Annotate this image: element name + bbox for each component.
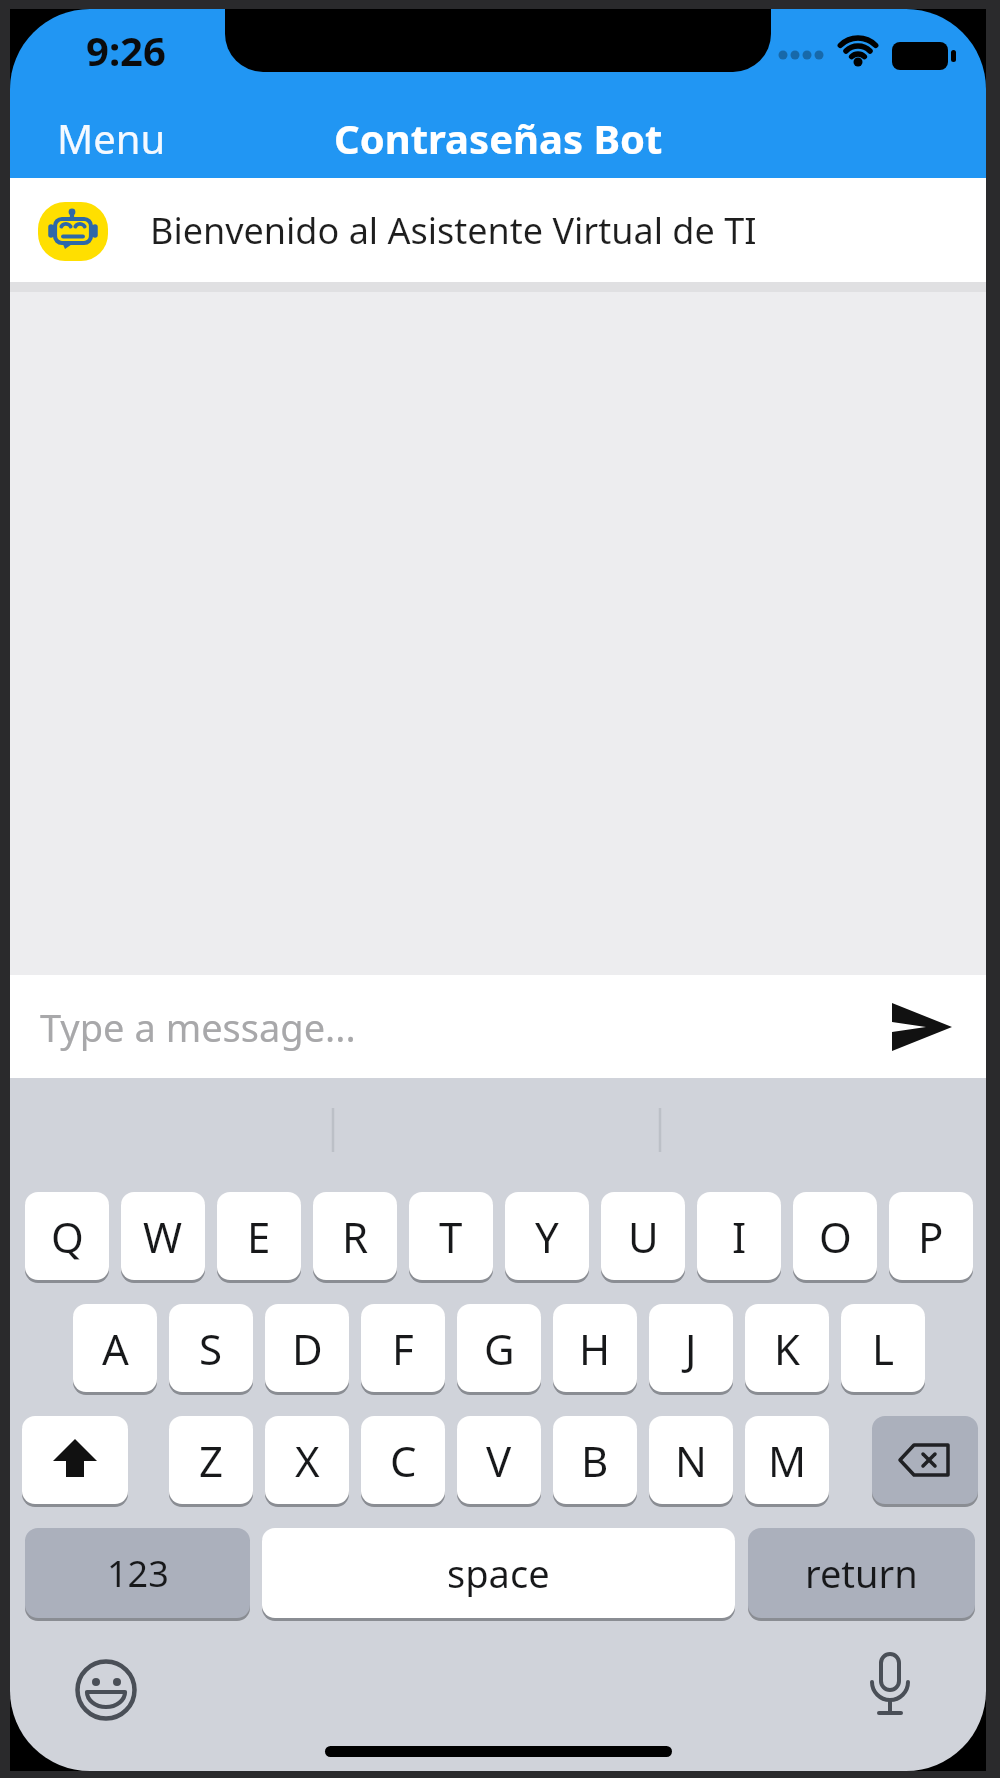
staticText: Menu (57, 111, 166, 165)
button[interactable]: Y (505, 1192, 589, 1280)
staticText: O (819, 1208, 852, 1265)
button[interactable]: D (265, 1304, 349, 1392)
staticText: E (247, 1208, 271, 1265)
staticText: J (685, 1320, 697, 1377)
staticText: K (774, 1320, 800, 1377)
button[interactable] (865, 1652, 915, 1728)
staticText: Contraseñas Bot (334, 111, 663, 165)
button[interactable]: H (553, 1304, 637, 1392)
staticText: Type a message... (40, 1001, 356, 1053)
button[interactable]: 123 (25, 1528, 250, 1618)
staticText: B (581, 1432, 609, 1489)
button[interactable]: M (745, 1416, 829, 1504)
staticText: H (579, 1320, 611, 1377)
staticText: F (392, 1320, 414, 1377)
button[interactable]: I (697, 1192, 781, 1280)
staticText: M (768, 1432, 807, 1489)
button[interactable]: V (457, 1416, 541, 1504)
button[interactable]: O (793, 1192, 877, 1280)
staticText: C (390, 1432, 417, 1489)
staticText: S (199, 1320, 223, 1377)
button[interactable]: W (121, 1192, 205, 1280)
button[interactable]: A (73, 1304, 157, 1392)
button[interactable]: K (745, 1304, 829, 1392)
button[interactable]: U (601, 1192, 685, 1280)
staticText: Y (535, 1208, 559, 1265)
staticText: U (628, 1208, 659, 1265)
staticText: G (484, 1320, 515, 1377)
staticText: A (102, 1320, 129, 1377)
staticText: I (732, 1208, 747, 1265)
staticText: 123 (107, 1549, 169, 1598)
button[interactable]: Type a message... (10, 975, 986, 1078)
button[interactable]: J (649, 1304, 733, 1392)
staticText: space (447, 1547, 550, 1599)
button[interactable]: return (748, 1528, 975, 1618)
button[interactable]: N (649, 1416, 733, 1504)
staticText: V (486, 1432, 512, 1489)
staticText: W (143, 1208, 183, 1265)
staticText: return (805, 1547, 918, 1599)
button[interactable]: Menu (40, 97, 200, 178)
staticText: N (675, 1432, 707, 1489)
button[interactable]: L (841, 1304, 925, 1392)
staticText: T (439, 1208, 463, 1265)
button[interactable]: space (262, 1528, 735, 1618)
button[interactable]: B (553, 1416, 637, 1504)
button[interactable]: F (361, 1304, 445, 1392)
button[interactable]: S (169, 1304, 253, 1392)
button[interactable]: Bienvenido al Asistente Virtual de TI (10, 178, 986, 282)
staticText: X (295, 1432, 320, 1489)
button[interactable]: Q (25, 1192, 109, 1280)
button[interactable] (75, 1659, 139, 1723)
staticText: P (918, 1208, 944, 1265)
button[interactable] (22, 1416, 128, 1504)
button[interactable]: E (217, 1192, 301, 1280)
staticText: Z (199, 1432, 224, 1489)
staticText: Bienvenido al Asistente Virtual de TI (150, 206, 757, 255)
button[interactable]: P (889, 1192, 973, 1280)
button[interactable]: Z (169, 1416, 253, 1504)
button[interactable]: T (409, 1192, 493, 1280)
staticText: L (872, 1320, 895, 1377)
staticText: 9:26 (86, 23, 166, 77)
staticText: Q (51, 1208, 84, 1265)
button[interactable]: C (361, 1416, 445, 1504)
staticText: R (342, 1208, 369, 1265)
button[interactable]: R (313, 1192, 397, 1280)
button[interactable]: X (265, 1416, 349, 1504)
button[interactable] (872, 1416, 978, 1504)
staticText: D (292, 1320, 323, 1377)
button[interactable]: G (457, 1304, 541, 1392)
button[interactable] (892, 1003, 952, 1051)
